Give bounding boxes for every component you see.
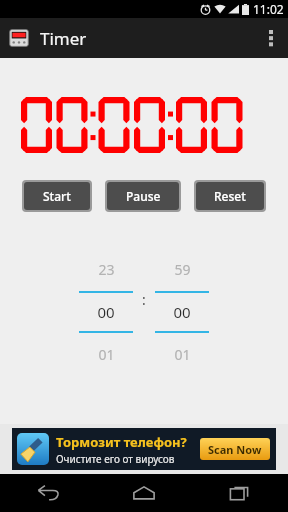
staticText: 59 <box>174 260 191 279</box>
staticText: 00 <box>173 302 191 322</box>
button[interactable]: Pause <box>107 182 179 210</box>
staticText: Scan Now <box>208 442 262 457</box>
staticText: 11:02 <box>253 1 284 17</box>
staticText: Очистите его от вирусов <box>56 452 175 466</box>
staticText: 01 <box>98 345 115 364</box>
staticText: Pause <box>126 188 161 204</box>
staticText: 01 <box>174 345 191 364</box>
button[interactable]: 23 <box>75 260 137 364</box>
button[interactable]: Back <box>0 474 96 512</box>
staticText: 00 <box>97 302 115 322</box>
button[interactable]: 59 <box>151 260 213 364</box>
button[interactable]: Start <box>24 182 90 210</box>
button[interactable]: Тормозит телефон? <box>12 428 276 470</box>
button[interactable]: Scan Now <box>208 438 262 460</box>
staticText: Timer <box>40 27 87 50</box>
button[interactable]: Recent apps <box>192 474 288 512</box>
staticText: Тормозит телефон? <box>56 433 187 451</box>
staticText: Reset <box>214 188 246 204</box>
button[interactable]: More options <box>254 18 288 58</box>
staticText: 23 <box>98 260 115 279</box>
staticText: : <box>142 290 146 309</box>
button[interactable]: Reset <box>196 182 264 210</box>
staticText: Start <box>43 188 71 204</box>
button[interactable]: Home <box>96 474 192 512</box>
